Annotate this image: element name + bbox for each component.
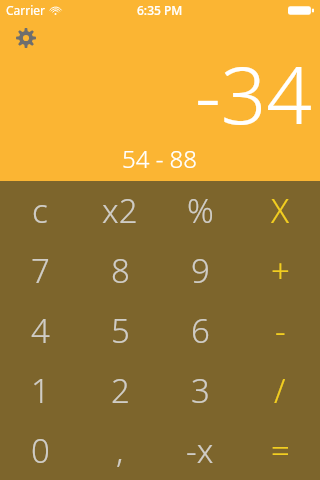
button[interactable]: 5 (80, 300, 160, 360)
staticText: 9 (191, 248, 210, 293)
staticText: = (271, 428, 290, 473)
staticText: 1 (31, 368, 50, 413)
button[interactable]: c (0, 181, 80, 240)
staticText: 3 (191, 368, 210, 413)
button[interactable]: , (80, 420, 160, 480)
button[interactable]: + (240, 240, 320, 300)
button[interactable]: X (240, 181, 320, 240)
button[interactable]: - (240, 300, 320, 360)
button[interactable]: 3 (160, 360, 240, 420)
button[interactable]: 6 (160, 300, 240, 360)
staticText: - (275, 308, 286, 353)
button[interactable]: % (160, 181, 240, 240)
button[interactable]: -x (160, 420, 240, 480)
button[interactable]: 4 (0, 300, 80, 360)
button[interactable]: 1 (0, 360, 80, 420)
staticText: 6 (191, 308, 210, 353)
staticText: + (271, 248, 290, 293)
staticText: 5 (111, 308, 130, 353)
button[interactable]: x2 (80, 181, 160, 240)
button[interactable]: Settings (13, 25, 39, 51)
staticText: X (271, 188, 290, 233)
button[interactable]: 8 (80, 240, 160, 300)
button[interactable]: 9 (160, 240, 240, 300)
staticText: 0 (31, 428, 50, 473)
button[interactable]: 2 (80, 360, 160, 420)
staticText: -x (186, 428, 214, 473)
button[interactable]: 7 (0, 240, 80, 300)
staticText: c (32, 188, 48, 233)
staticText: / (274, 368, 286, 413)
staticText: % (187, 188, 214, 233)
staticText: Carrier (6, 2, 46, 18)
staticText: 54 - 88 (122, 142, 198, 175)
button[interactable]: = (240, 420, 320, 480)
staticText: 8 (111, 248, 130, 293)
staticText: x2 (102, 188, 138, 233)
staticText: 2 (111, 368, 130, 413)
staticText: 7 (31, 248, 50, 293)
staticText: , (116, 428, 124, 473)
staticText: 6:35 PM (137, 2, 183, 18)
button[interactable]: 0 (0, 420, 80, 480)
staticText: -34 (0, 38, 312, 147)
staticText: 4 (31, 308, 50, 353)
button[interactable]: / (240, 360, 320, 420)
